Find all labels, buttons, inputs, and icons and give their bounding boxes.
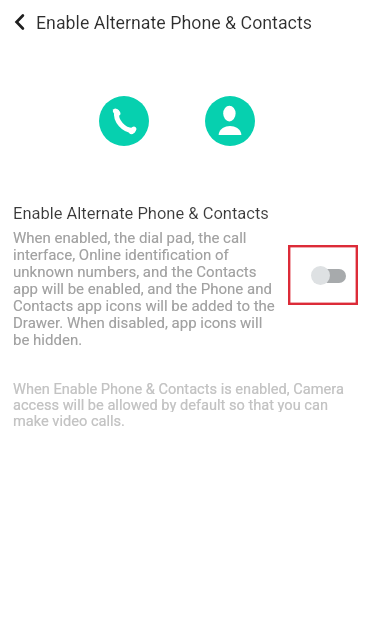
staticText: Contacts app icons will be added to the [13, 297, 275, 314]
button[interactable]: Phone [99, 96, 149, 146]
staticText: Enable Alternate Phone & Contacts [13, 204, 269, 223]
staticText: interface, Online identification of [13, 246, 229, 263]
button[interactable]: Contacts [205, 96, 255, 146]
staticText: Enable Alternate Phone & Contacts [36, 12, 312, 33]
staticText: When enabled, the dial pad, the call [13, 229, 247, 246]
staticText: access will be allowed by default so tha… [13, 396, 328, 412]
button[interactable]: Enable Alternate Phone and Contacts swit… [311, 265, 347, 286]
staticText: be hidden. [13, 331, 83, 348]
staticText: unknown numbers, and the Contacts [13, 263, 257, 280]
staticText: When Enable Phone & Contacts is enabled,… [13, 380, 344, 396]
button[interactable]: Back [2, 4, 38, 40]
staticText: app will be enabled, and the Phone and [13, 280, 272, 297]
staticText: Drawer. When disabled, app icons will [13, 314, 263, 331]
staticText: make video calls. [13, 412, 125, 428]
